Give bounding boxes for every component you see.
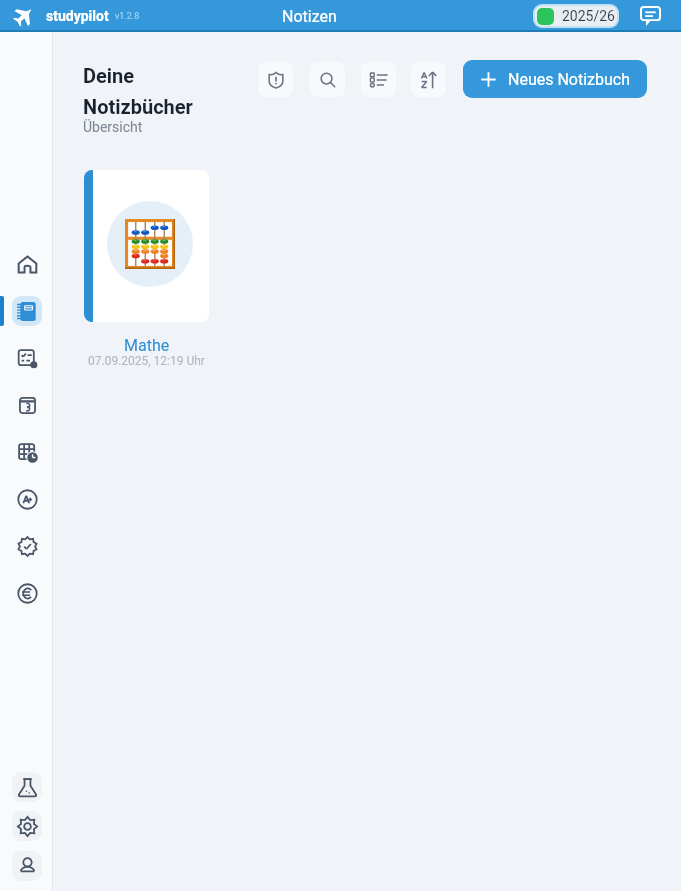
button[interactable]: Kalender — [12, 390, 42, 420]
button[interactable]: Warnungen — [258, 62, 293, 97]
button[interactable]: Stundenplan — [12, 437, 42, 467]
button[interactable]: Noten — [12, 484, 42, 514]
button[interactable]: Liste — [361, 62, 396, 97]
button[interactable]: Neues Notizbuch — [463, 60, 647, 98]
button[interactable]: Start — [12, 249, 42, 279]
button[interactable] — [84, 170, 209, 322]
button[interactable]: Nachrichten — [639, 5, 661, 27]
staticText: studypilot — [46, 8, 109, 24]
button[interactable]: Suchen — [310, 62, 345, 97]
staticText: Deine Notizbücher — [83, 64, 233, 119]
button[interactable]: Notizbücher — [12, 296, 42, 326]
button[interactable]: Abzeichen — [12, 531, 42, 561]
button[interactable]: Aufgaben — [12, 343, 42, 373]
button[interactable]: Profil — [12, 851, 42, 881]
button[interactable]: Sortieren — [411, 62, 446, 97]
staticText: 2025/26 — [562, 8, 615, 24]
staticText: Neues Notizbuch — [508, 70, 631, 89]
button[interactable]: 2025/26 — [533, 4, 619, 28]
staticText: Notizen — [282, 7, 337, 26]
staticText: v1.2.8 — [115, 11, 140, 22]
button[interactable]: Einstellungen — [12, 811, 42, 841]
staticText: 07.09.2025, 12:19 Uhr — [88, 354, 205, 368]
staticText: Übersicht — [83, 119, 143, 135]
button[interactable]: Finanzen — [12, 578, 42, 608]
staticText: Mathe — [124, 336, 170, 355]
button[interactable]: Labor — [12, 772, 42, 802]
